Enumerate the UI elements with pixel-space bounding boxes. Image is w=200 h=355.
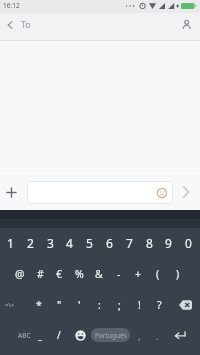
- button[interactable]: 4: [59, 228, 79, 258]
- button[interactable]: 3: [40, 228, 60, 258]
- staticText: ': [78, 298, 81, 312]
- button[interactable]: 6: [99, 228, 119, 258]
- button[interactable]: ?: [149, 290, 169, 320]
- button[interactable]: 5: [79, 228, 99, 258]
- staticText: %: [75, 267, 84, 281]
- button[interactable]: 9: [158, 228, 178, 258]
- button[interactable]: [167, 320, 194, 350]
- button[interactable]: 7: [119, 228, 139, 258]
- staticText: ?: [157, 298, 162, 312]
- staticText: -: [117, 267, 121, 281]
- staticText: 0: [185, 235, 192, 251]
- staticText: +: [135, 267, 142, 281]
- button[interactable]: 1: [0, 228, 20, 258]
- button[interactable]: (: [148, 259, 168, 289]
- button[interactable]: !: [129, 290, 149, 320]
- staticText: 7: [126, 235, 133, 251]
- staticText: 8: [146, 235, 153, 251]
- button[interactable]: ": [49, 290, 69, 320]
- staticText: ;: [118, 298, 121, 312]
- button[interactable]: [27, 181, 173, 204]
- button[interactable]: ABC: [11, 320, 37, 350]
- staticText: ABC: [18, 331, 31, 340]
- staticText: 5: [86, 235, 93, 251]
- button[interactable]: Português: [91, 328, 130, 342]
- button[interactable]: 0: [178, 228, 198, 258]
- button[interactable]: .: [150, 321, 164, 351]
- button[interactable]: [2, 182, 21, 202]
- button[interactable]: ': [69, 290, 89, 320]
- button[interactable]: [70, 320, 91, 350]
- button[interactable]: /: [49, 320, 69, 350]
- button[interactable]: *: [29, 290, 49, 320]
- staticText: To: [21, 19, 31, 31]
- button[interactable]: -: [109, 259, 129, 289]
- button[interactable]: @: [10, 259, 30, 289]
- staticText: Português: [95, 331, 127, 340]
- staticText: .: [156, 330, 159, 342]
- button[interactable]: :: [89, 290, 109, 320]
- staticText: (: [156, 267, 160, 281]
- button[interactable]: ;: [109, 290, 129, 320]
- button[interactable]: &: [89, 259, 109, 289]
- button[interactable]: [177, 181, 195, 203]
- button[interactable]: #: [30, 259, 50, 289]
- staticText: ": [57, 298, 62, 312]
- staticText: 9: [165, 235, 172, 251]
- button[interactable]: ): [168, 259, 188, 289]
- button[interactable]: To: [0, 13, 56, 40]
- staticText: *: [36, 298, 42, 312]
- button[interactable]: [176, 14, 197, 36]
- button[interactable]: 2: [20, 228, 40, 258]
- button[interactable]: ,: [132, 321, 146, 351]
- button[interactable]: _: [33, 320, 47, 350]
- staticText: €: [56, 267, 63, 281]
- staticText: 4: [66, 235, 73, 251]
- staticText: 3: [47, 235, 54, 251]
- button[interactable]: +: [128, 259, 148, 289]
- staticText: =\<: [5, 301, 15, 309]
- button[interactable]: 8: [139, 228, 159, 258]
- button[interactable]: [172, 290, 199, 320]
- staticText: #: [37, 267, 44, 281]
- staticText: ,: [138, 330, 141, 342]
- staticText: 16:12: [3, 1, 20, 10]
- staticText: &: [95, 267, 103, 281]
- staticText: @: [15, 267, 25, 281]
- staticText: 2: [27, 235, 34, 251]
- staticText: 6: [106, 235, 113, 251]
- staticText: _: [38, 329, 42, 341]
- button[interactable]: =\<: [0, 290, 22, 320]
- staticText: !: [138, 298, 141, 312]
- button[interactable]: %: [69, 259, 89, 289]
- staticText: /: [57, 328, 61, 342]
- staticText: 1: [7, 235, 14, 251]
- button[interactable]: €: [49, 259, 69, 289]
- staticText: :: [98, 298, 101, 312]
- staticText: ): [176, 267, 180, 281]
